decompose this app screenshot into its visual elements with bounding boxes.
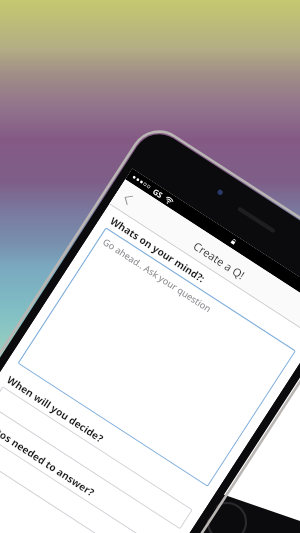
button[interactable]: Create a Q app screenshot — [0, 0, 300, 533]
